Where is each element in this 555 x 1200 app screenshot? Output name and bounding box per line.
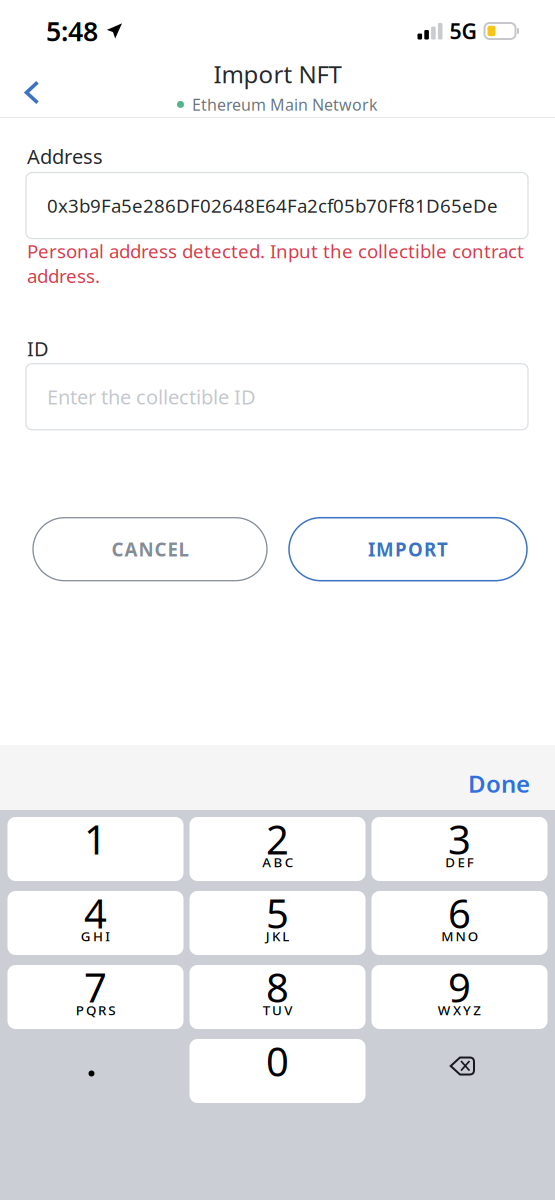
staticText: S (108, 1001, 115, 1019)
staticText: K (272, 927, 280, 945)
button[interactable]: 7 (7, 965, 183, 1029)
staticText: ID (27, 335, 49, 362)
staticText: E (457, 853, 464, 871)
staticText: 6 (448, 886, 471, 939)
staticText: G (81, 927, 91, 945)
staticText: 7 (84, 960, 107, 1013)
staticText: C (285, 853, 293, 871)
staticText: R (98, 1001, 106, 1019)
staticText: W (438, 1001, 451, 1019)
staticText: Enter the collectible ID (47, 383, 256, 410)
staticText: IMPORT (368, 537, 448, 562)
staticText: 2 (266, 812, 289, 865)
staticText: 5:48 (46, 13, 98, 49)
staticText: 9 (448, 960, 471, 1013)
staticText: 8 (266, 960, 289, 1013)
staticText: Done (468, 768, 530, 799)
staticText: O (468, 927, 478, 945)
staticText: Import NFT (213, 58, 341, 90)
staticText: M (441, 927, 453, 945)
staticText: H (93, 927, 103, 945)
staticText: 0 (266, 1034, 289, 1087)
staticText: Y (463, 1001, 471, 1019)
button[interactable]: 0 (189, 1039, 365, 1103)
staticText: A (262, 853, 271, 871)
staticText: I (105, 927, 110, 945)
staticText: Personal address detected. Input the col… (27, 239, 524, 288)
staticText: 4 (84, 886, 107, 939)
button[interactable]: 9 (371, 965, 547, 1029)
staticText: 1 (84, 812, 107, 865)
staticText: T (263, 1001, 270, 1019)
button[interactable]: Decimal point (7, 1039, 183, 1103)
staticText: Address (27, 143, 103, 170)
staticText: 5 (266, 886, 289, 939)
button[interactable]: 8 (189, 965, 365, 1029)
button[interactable]: IMPORT (289, 518, 527, 581)
button[interactable]: Back (0, 56, 58, 117)
button[interactable]: 2 (189, 817, 365, 881)
button[interactable]: Done (468, 745, 555, 810)
staticText: CANCEL (111, 537, 188, 562)
staticText: Z (473, 1001, 481, 1019)
staticText: 3 (448, 812, 471, 865)
staticText: U (272, 1001, 282, 1019)
staticText: 0x3b9Fa5e286DF02648E64Fa2cf05b70Ff81D65e… (47, 193, 498, 218)
staticText: D (445, 853, 455, 871)
staticText: L (282, 927, 289, 945)
button[interactable]: 3 (371, 817, 547, 881)
button[interactable]: CANCEL (33, 518, 267, 581)
button[interactable]: 4 (7, 891, 183, 955)
button[interactable]: 1 (7, 817, 183, 881)
staticText: J (266, 927, 270, 945)
button[interactable]: 5 (189, 891, 365, 955)
staticText: X (453, 1001, 461, 1019)
staticText: N (455, 927, 465, 945)
staticText: V (284, 1001, 292, 1019)
staticText: B (273, 853, 282, 871)
button[interactable]: 6 (371, 891, 547, 955)
staticText: Ethereum Main Network (192, 94, 378, 115)
staticText: 5G (449, 17, 476, 45)
staticText: P (76, 1001, 84, 1019)
button[interactable]: Delete (371, 1039, 547, 1103)
staticText: Q (86, 1001, 96, 1019)
staticText: F (467, 853, 474, 871)
